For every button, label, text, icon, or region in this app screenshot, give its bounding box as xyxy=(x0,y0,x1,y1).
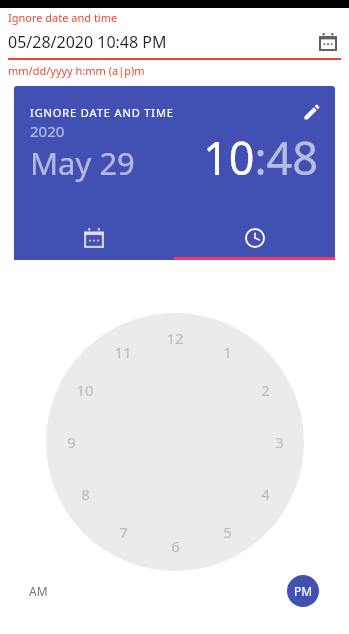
button[interactable]: Time tab xyxy=(174,215,335,260)
staticText: 4 xyxy=(261,484,270,504)
button[interactable]: 05/28/2020 10:48 PM xyxy=(8,29,341,55)
staticText: May 29 xyxy=(30,142,135,184)
staticText: 9 xyxy=(67,432,76,452)
button[interactable]: Open date picker xyxy=(315,29,341,55)
staticText: 2 xyxy=(261,380,270,400)
button[interactable]: Date tab xyxy=(14,215,174,260)
staticText: 8 xyxy=(81,484,90,504)
staticText: IGNORE DATE AND TIME xyxy=(30,105,299,120)
staticText: AM xyxy=(29,583,48,599)
button[interactable]: 10:48 xyxy=(203,123,319,184)
staticText: 2020 xyxy=(30,121,65,141)
staticText: 10:48 xyxy=(203,127,319,188)
button[interactable]: Edit xyxy=(299,99,325,125)
staticText: mm/dd/yyyy h:mm (a|p)m xyxy=(8,63,145,78)
staticText: 11 xyxy=(114,342,132,362)
staticText: 7 xyxy=(119,522,128,542)
staticText: PM xyxy=(294,583,313,599)
button[interactable]: 2020 xyxy=(30,121,135,184)
staticText: 6 xyxy=(171,536,180,556)
staticText: 3 xyxy=(275,432,284,452)
button[interactable]: PM xyxy=(287,575,319,607)
staticText: 12 xyxy=(166,328,184,348)
staticText: 5 xyxy=(223,522,232,542)
staticText: 10 xyxy=(76,380,94,400)
button[interactable]: AM xyxy=(22,575,54,607)
staticText: 1 xyxy=(223,342,232,362)
staticText: 05/28/2020 10:48 PM xyxy=(8,31,315,53)
staticText: Ignore date and time xyxy=(8,10,118,25)
